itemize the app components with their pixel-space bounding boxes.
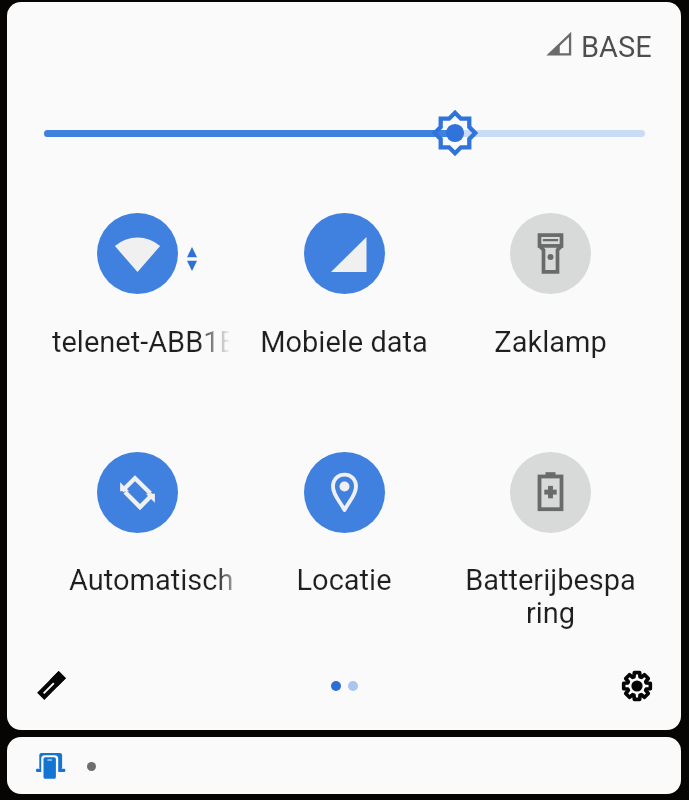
button[interactable] xyxy=(461,205,639,355)
button[interactable] xyxy=(255,205,433,355)
button[interactable] xyxy=(255,444,433,594)
button[interactable] xyxy=(7,737,681,794)
staticText: Zaklamp xyxy=(494,325,607,359)
button[interactable] xyxy=(48,205,226,355)
button[interactable]: Brightness xyxy=(429,107,481,159)
button[interactable]: Edit xyxy=(23,657,79,713)
staticText: Batterijbespa ring xyxy=(465,563,636,630)
button[interactable]: Settings xyxy=(609,658,665,714)
staticText: telenet-ABB1B xyxy=(52,325,230,359)
staticText: Automatisch xyxy=(69,563,234,597)
staticText: Locatie xyxy=(296,563,392,597)
button[interactable] xyxy=(461,444,639,594)
button[interactable] xyxy=(48,444,226,594)
staticText: BASE xyxy=(581,30,652,64)
staticText: Mobiele data xyxy=(260,325,428,359)
